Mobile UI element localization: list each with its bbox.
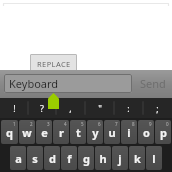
button[interactable]: d	[44, 146, 60, 170]
staticText: 9	[149, 121, 152, 127]
staticText: u	[108, 125, 116, 140]
staticText: o	[143, 125, 150, 140]
staticText: r	[59, 125, 64, 140]
staticText: Keyboard	[9, 76, 59, 91]
staticText: q	[6, 125, 13, 140]
staticText: :	[127, 102, 130, 114]
staticText: 3	[47, 121, 50, 127]
button[interactable]: p	[155, 120, 171, 144]
staticText: 8	[132, 121, 135, 127]
staticText: 5	[81, 121, 84, 127]
staticText: f	[67, 151, 72, 166]
button[interactable]: o	[138, 120, 154, 144]
staticText: w	[22, 125, 32, 140]
staticText: Send	[140, 76, 166, 91]
staticText: 0	[166, 121, 169, 127]
staticText: ?	[40, 102, 44, 114]
button[interactable]: s	[27, 146, 43, 170]
staticText: 7	[115, 121, 118, 127]
staticText: a	[15, 151, 22, 166]
staticText: ,	[69, 102, 72, 114]
staticText: 6	[98, 121, 101, 127]
button[interactable]: w	[19, 120, 35, 144]
button[interactable]: u	[104, 120, 120, 144]
button[interactable]: :	[114, 98, 143, 118]
button[interactable]: "	[85, 98, 114, 118]
staticText: d	[49, 151, 56, 166]
staticText: ;	[156, 102, 159, 114]
staticText: k	[134, 151, 141, 166]
button[interactable]: REPLACE	[30, 54, 77, 74]
button[interactable]: ?	[28, 98, 56, 118]
button[interactable]: a	[10, 146, 26, 170]
staticText: j	[118, 151, 122, 166]
button[interactable]: y	[87, 120, 103, 144]
staticText: s	[32, 151, 38, 166]
button[interactable]: h	[95, 146, 111, 170]
staticText: !	[13, 102, 16, 114]
staticText: g	[83, 151, 90, 166]
staticText: "	[98, 102, 102, 114]
other: Text selection handle	[48, 93, 59, 109]
button[interactable]: k	[129, 146, 145, 170]
button[interactable]: g	[78, 146, 94, 170]
button[interactable]: q	[1, 120, 18, 144]
button[interactable]: Send	[134, 73, 172, 94]
button[interactable]: Keyboard	[4, 74, 132, 93]
staticText: h	[99, 151, 107, 166]
staticText: p	[160, 125, 167, 140]
staticText: e	[41, 125, 48, 140]
button[interactable]: !	[0, 98, 28, 118]
button[interactable]: ,	[56, 98, 85, 118]
staticText: y	[92, 125, 99, 140]
staticText: l	[152, 151, 156, 166]
button[interactable]: e	[36, 120, 52, 144]
staticText: 1	[13, 121, 16, 127]
button[interactable]: i	[121, 120, 137, 144]
button[interactable]: j	[112, 146, 128, 170]
button[interactable]: l	[146, 146, 162, 170]
button[interactable]: r	[53, 120, 69, 144]
button[interactable]: t	[70, 120, 86, 144]
staticText: 4	[64, 121, 67, 127]
button[interactable]: f	[61, 146, 77, 170]
staticText: i	[127, 125, 131, 140]
staticText: 2	[30, 121, 33, 127]
staticText: REPLACE	[37, 59, 71, 69]
button[interactable]: ;	[143, 98, 172, 118]
staticText: t	[76, 125, 81, 140]
